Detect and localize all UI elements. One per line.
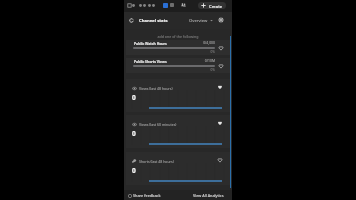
button[interactable]: Channel stats [139,18,168,24]
button[interactable]: Favorite [218,45,224,51]
button[interactable]: Active tab [163,3,168,8]
staticText: 0 [132,166,136,175]
button[interactable]: Tab 5 [147,3,152,8]
button[interactable]: Refresh [129,18,134,23]
button[interactable]: Tab [170,3,174,7]
staticText: 0 [132,129,136,138]
staticText: add one of the following [124,34,232,39]
staticText: Share feedback [133,193,161,198]
staticText: Create [209,4,223,9]
button[interactable]: Overview [189,18,213,24]
staticText: 0 [132,93,136,102]
staticText: Views (last 48 hours) [139,86,173,91]
button[interactable]: Tab 6 [151,3,156,8]
button[interactable]: Public Watch Hours [126,40,231,55]
button[interactable]: View All Analytics [193,193,224,198]
button[interactable]: Account [181,3,186,8]
button[interactable]: Favorite [218,63,224,69]
button[interactable]: Favorite [217,84,223,90]
button[interactable]: Views (last 60 minutes) [126,115,231,148]
staticText: Views (last 60 minutes) [139,122,177,127]
button[interactable]: Tab 3 [138,3,143,8]
button[interactable]: Create [198,2,226,9]
button[interactable]: Tab 2 [131,3,136,8]
button[interactable]: Settings [218,17,224,23]
staticText: 0% [184,50,215,54]
button[interactable]: Tab 1 [127,3,132,8]
button[interactable]: Favorite [217,120,223,126]
staticText: 0% [184,68,215,72]
staticText: Public Shorts Views [134,59,167,64]
button[interactable]: Views (last 48 hours) [126,79,231,112]
button[interactable]: Shorts (last 48 hours) [126,152,231,185]
staticText: Shorts (last 48 hours) [139,159,174,164]
staticText: 0/10M [184,58,215,63]
button[interactable]: Tab 4 [142,3,147,8]
button[interactable]: Share feedback [128,193,161,198]
staticText: Public Watch Hours [134,41,167,46]
staticText: 0/4,000 [184,40,215,45]
button[interactable]: Public Shorts Views [126,58,231,73]
staticText: Overview [189,18,208,24]
button[interactable]: Favorite [217,157,223,163]
